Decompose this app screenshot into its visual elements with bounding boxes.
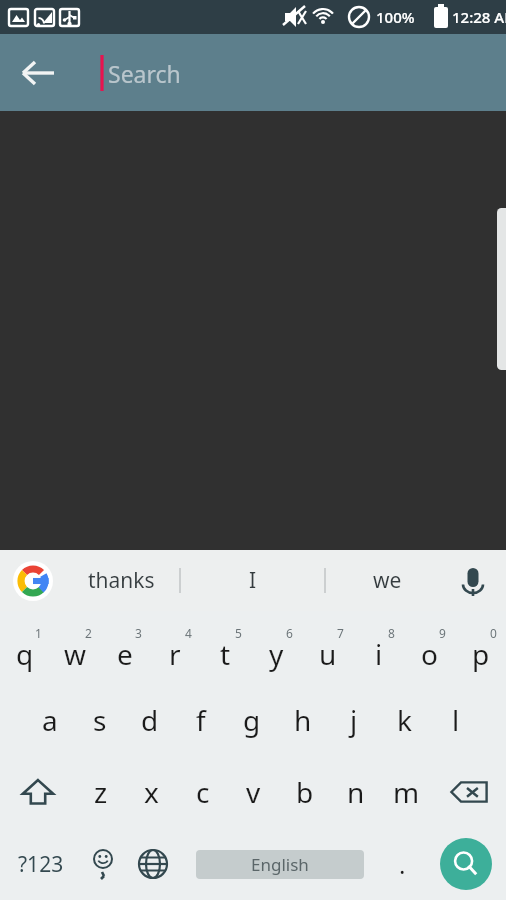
button[interactable]: Search [440, 838, 492, 890]
button[interactable]: m [381, 756, 432, 828]
staticText: 5 [235, 625, 242, 641]
button[interactable]: f [175, 684, 226, 756]
button[interactable]: English [196, 850, 364, 879]
button[interactable]: a [25, 684, 75, 756]
staticText: v [246, 773, 261, 811]
button[interactable]: thanks [62, 550, 180, 611]
button[interactable]: . [378, 828, 426, 900]
button[interactable]: n [330, 756, 381, 828]
button[interactable]: 6 [251, 611, 302, 684]
button[interactable]: z [75, 756, 126, 828]
button[interactable]: 3 [100, 611, 150, 684]
button[interactable]: 2 [50, 611, 100, 684]
staticText: o [421, 635, 438, 673]
staticText: 7 [337, 625, 344, 641]
staticText: g [243, 701, 261, 739]
button[interactable]: Shift [0, 756, 75, 828]
staticText: b [296, 773, 314, 811]
staticText: s [93, 701, 107, 739]
staticText: I [249, 566, 257, 595]
button[interactable]: l [430, 684, 481, 756]
button[interactable]: 1 [0, 611, 50, 684]
staticText: l [452, 701, 460, 739]
staticText: ?123 [18, 850, 64, 879]
button[interactable]: Emoji [78, 828, 128, 900]
staticText: 6 [286, 625, 293, 641]
staticText: w [64, 635, 87, 673]
button[interactable]: x [126, 756, 177, 828]
button[interactable]: k [379, 684, 430, 756]
button[interactable]: s [75, 684, 125, 756]
button[interactable]: c [177, 756, 228, 828]
button[interactable]: we [325, 550, 450, 611]
button[interactable]: 7 [302, 611, 353, 684]
staticText: 100% [376, 7, 415, 27]
button[interactable]: Change language [128, 828, 178, 900]
staticText: English [251, 853, 309, 876]
staticText: we [373, 566, 402, 595]
staticText: n [347, 773, 365, 811]
staticText: . [399, 848, 406, 881]
button[interactable]: Back [14, 47, 66, 99]
button[interactable]: 8 [353, 611, 404, 684]
staticText: u [319, 635, 337, 673]
staticText: 0 [490, 625, 497, 641]
button[interactable]: Backspace [432, 756, 506, 828]
button[interactable]: 0 [455, 611, 506, 684]
staticText: 9 [439, 625, 446, 641]
button[interactable]: I [180, 550, 325, 611]
button[interactable]: g [226, 684, 277, 756]
button[interactable]: ?123 [8, 828, 74, 900]
button[interactable]: Search [96, 47, 506, 99]
button[interactable]: 9 [404, 611, 455, 684]
staticText: j [350, 701, 358, 739]
staticText: 8 [388, 625, 395, 641]
staticText: i [375, 635, 383, 673]
button[interactable]: Voice input [450, 558, 496, 604]
button[interactable]: h [277, 684, 328, 756]
staticText: m [393, 773, 420, 811]
staticText: f [196, 701, 206, 739]
button[interactable]: j [328, 684, 379, 756]
staticText: c [196, 773, 210, 811]
button[interactable]: 4 [150, 611, 200, 684]
staticText: a [42, 701, 58, 739]
staticText: x [144, 773, 159, 811]
staticText: y [269, 635, 284, 673]
staticText: p [472, 635, 490, 673]
staticText: 1 [35, 625, 42, 641]
staticText: r [169, 635, 181, 673]
staticText: q [16, 635, 34, 673]
button[interactable]: b [279, 756, 330, 828]
staticText: 2 [85, 625, 92, 641]
staticText: z [94, 773, 108, 811]
staticText: h [294, 701, 312, 739]
staticText: thanks [88, 566, 155, 595]
staticText: 12:28 AM [452, 7, 506, 27]
button[interactable]: 5 [200, 611, 251, 684]
button[interactable]: v [228, 756, 279, 828]
staticText: Search [108, 58, 181, 89]
staticText: e [117, 635, 133, 673]
staticText: 4 [185, 625, 192, 641]
staticText: t [220, 635, 231, 673]
button[interactable]: Google [13, 561, 53, 601]
staticText: d [141, 701, 159, 739]
button[interactable]: d [125, 684, 175, 756]
staticText: k [397, 701, 412, 739]
staticText: 3 [135, 625, 142, 641]
